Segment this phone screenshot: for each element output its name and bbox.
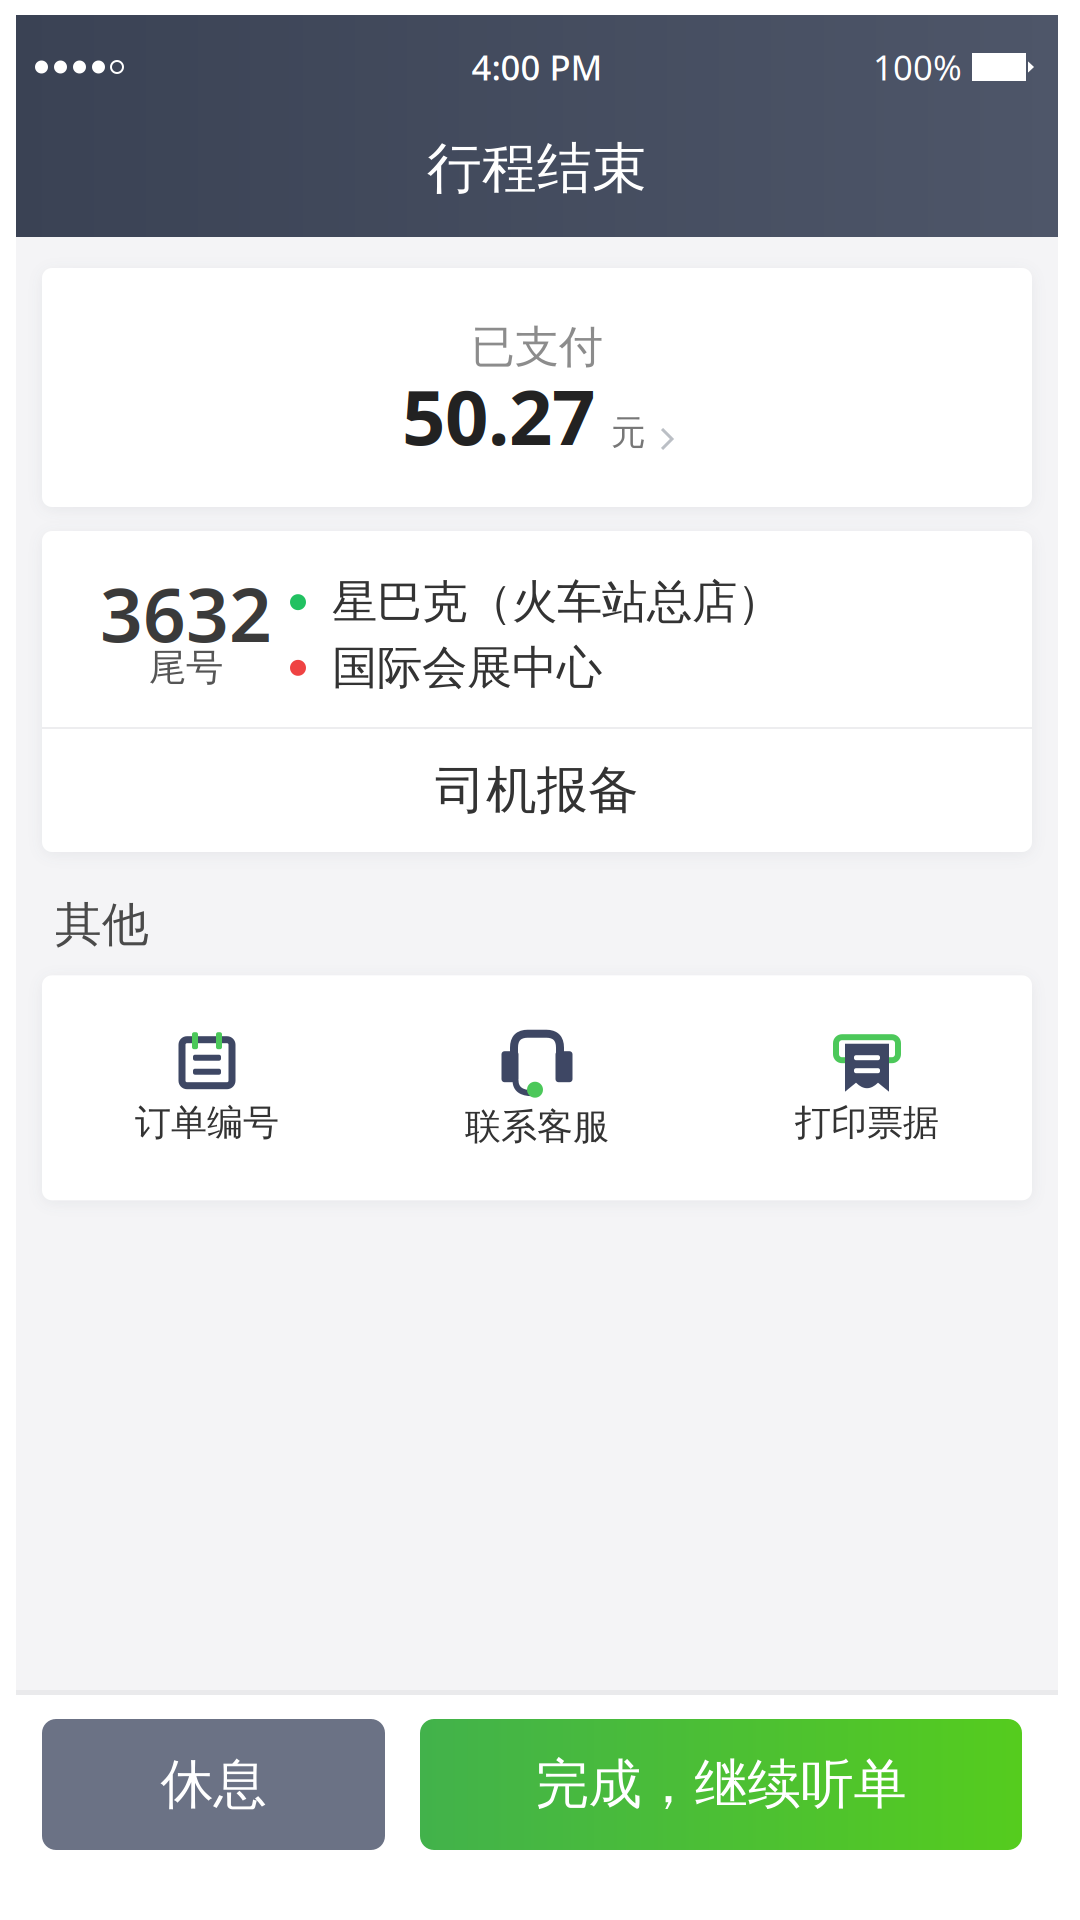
staticText: 联系客服: [465, 1105, 609, 1149]
staticText: 已支付: [471, 320, 603, 374]
staticText: 休息: [160, 1752, 266, 1817]
staticText: 50.27: [402, 365, 595, 466]
staticText: 打印票据: [795, 1101, 939, 1145]
button[interactable]: 完成，继续听单: [420, 1719, 1022, 1850]
staticText: 100%: [873, 44, 962, 90]
button[interactable]: 司机报备: [42, 729, 1032, 852]
staticText: 其他: [55, 896, 149, 953]
staticText: 元: [611, 411, 646, 454]
staticText: 星巴克（火车站总店）: [332, 574, 782, 630]
button[interactable]: 打印票据: [702, 975, 1032, 1200]
staticText: 尾号: [149, 645, 223, 690]
staticText: 国际会展中心: [332, 640, 602, 696]
button[interactable]: 联系客服: [372, 975, 702, 1200]
button[interactable]: 订单编号: [42, 975, 372, 1200]
staticText: 完成，继续听单: [535, 1752, 906, 1817]
staticText: 订单编号: [135, 1101, 279, 1145]
staticText: 行程结束: [427, 135, 647, 202]
staticText: 司机报备: [435, 759, 639, 822]
button[interactable]: 休息: [42, 1719, 385, 1850]
staticText: 4:00 PM: [471, 44, 602, 90]
button[interactable]: 已支付: [42, 268, 1032, 507]
staticText: 3632: [100, 563, 272, 663]
